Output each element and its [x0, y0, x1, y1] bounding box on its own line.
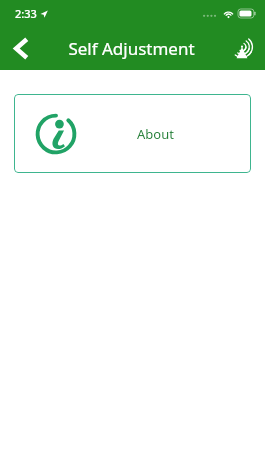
staticText: 2:33	[15, 6, 37, 21]
button[interactable]: About	[14, 94, 251, 173]
staticText: Self Adjustment	[68, 37, 195, 60]
button[interactable]: Back	[0, 28, 40, 68]
button[interactable]: Broadcast	[223, 29, 261, 67]
staticText: About	[137, 125, 174, 143]
